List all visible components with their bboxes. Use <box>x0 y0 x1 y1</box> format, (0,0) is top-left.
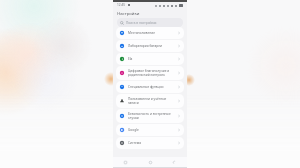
button[interactable]: Специальные функции <box>116 81 184 93</box>
staticText: Специальные функции <box>128 85 164 89</box>
button[interactable]: Пользователи и учётные <box>116 94 184 108</box>
staticText: Местоположение <box>128 31 155 35</box>
button[interactable]: Back <box>170 158 179 167</box>
button[interactable]: Recent apps <box>121 158 130 167</box>
staticText: случаи <box>128 116 139 120</box>
button[interactable]: Home <box>146 158 155 167</box>
button[interactable]: Местоположение <box>116 27 184 39</box>
staticText: Безопасность и экстренные <box>128 112 171 116</box>
button[interactable]: Система <box>116 137 184 149</box>
staticText: Система <box>128 141 142 145</box>
staticText: родительский контроль <box>128 73 165 77</box>
button[interactable]: Google <box>116 124 184 136</box>
staticText: Google <box>128 128 139 132</box>
button[interactable]: Ela <box>116 53 184 65</box>
staticText: Лаборатория батареи <box>128 44 162 48</box>
staticText: Ela <box>128 57 133 61</box>
staticText: Настройки <box>117 10 140 16</box>
button[interactable]: Безопасность и экстренные <box>116 109 184 123</box>
staticText: записи <box>128 101 139 105</box>
staticText: 12:45 <box>117 3 126 7</box>
button[interactable]: Лаборатория батареи <box>116 40 184 52</box>
button[interactable]: Цифровое благополучие и <box>116 66 184 80</box>
staticText: Пользователи и учётные <box>128 97 167 101</box>
staticText: Цифровое благополучие и <box>128 69 170 73</box>
button[interactable]: Поиск в настройках <box>117 18 183 27</box>
staticText: Поиск в настройках <box>126 21 157 25</box>
